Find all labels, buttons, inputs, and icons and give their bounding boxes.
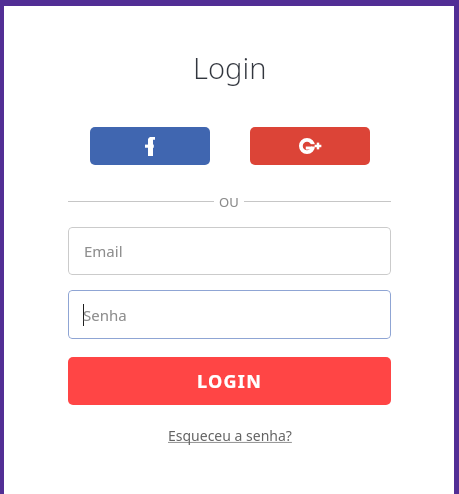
button[interactable]: Sign in with Google Plus (250, 127, 370, 165)
staticText: LOGIN (197, 369, 263, 394)
button[interactable]: Email (68, 227, 391, 275)
button[interactable]: Sign in with Facebook (90, 127, 210, 165)
staticText: Senha (83, 305, 127, 325)
button[interactable]: Esqueceu a senha? (168, 426, 292, 445)
staticText: Email (84, 241, 123, 261)
other: Sign in with Google Plus (299, 138, 322, 154)
other: Sign in with Facebook (145, 137, 155, 156)
staticText: OU (219, 193, 239, 209)
button[interactable]: Senha (68, 290, 391, 339)
staticText: Login (193, 48, 267, 87)
button[interactable]: LOGIN (68, 357, 391, 405)
